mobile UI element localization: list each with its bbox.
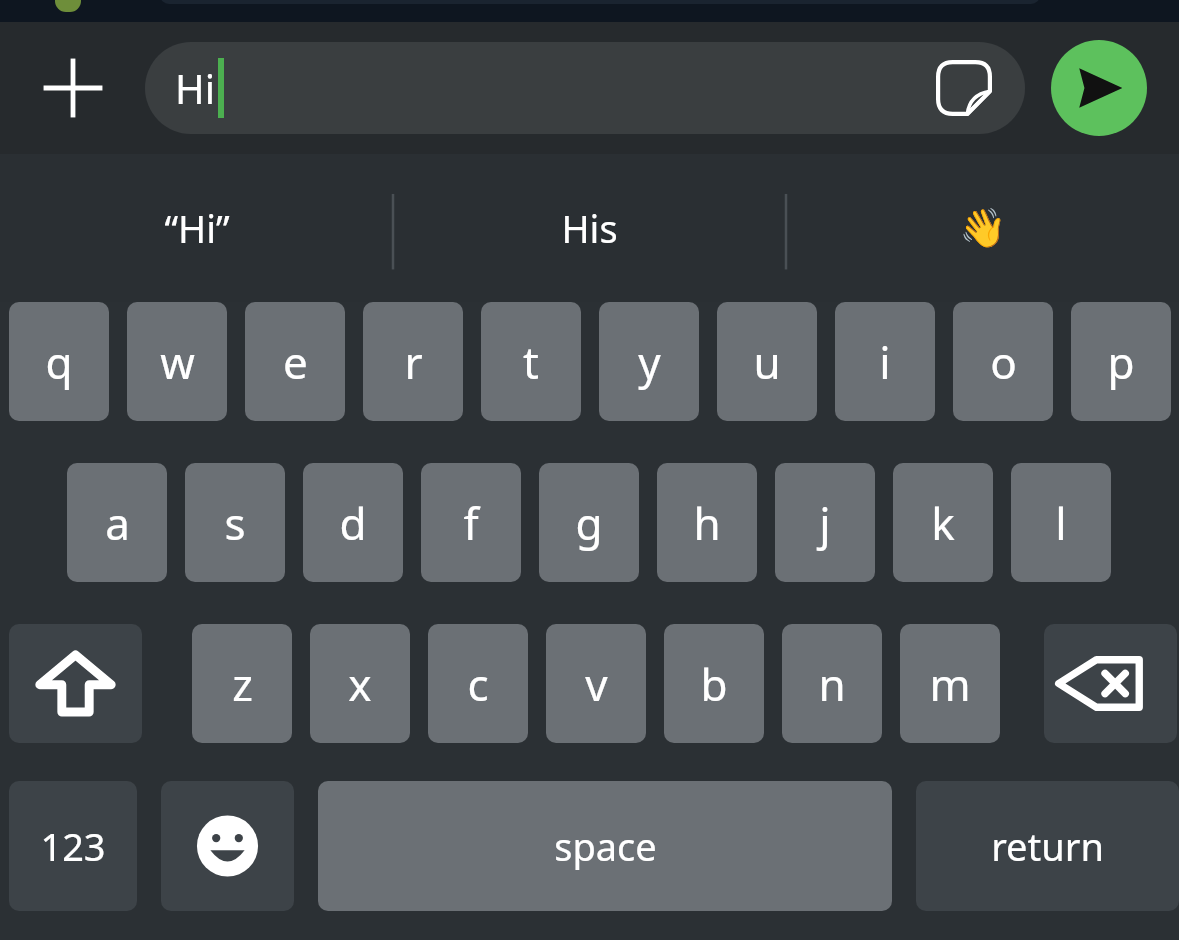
staticText: o <box>990 332 1017 392</box>
staticText: 123 <box>40 820 106 872</box>
staticText: b <box>700 654 728 714</box>
button[interactable]: k <box>893 463 993 582</box>
button[interactable]: i <box>835 302 935 421</box>
staticText: p <box>1107 332 1135 392</box>
button[interactable]: Send <box>1051 40 1147 136</box>
button[interactable]: v <box>546 624 646 743</box>
button[interactable]: q <box>9 302 109 421</box>
staticText: t <box>523 332 539 392</box>
staticText: q <box>45 332 73 392</box>
button[interactable]: w <box>127 302 227 421</box>
button[interactable]: f <box>421 463 521 582</box>
staticText: v <box>585 654 608 714</box>
staticText: space <box>554 820 657 872</box>
button[interactable]: “Hi” <box>0 154 393 302</box>
staticText: r <box>404 332 423 392</box>
button[interactable]: l <box>1011 463 1111 582</box>
button[interactable]: His <box>393 154 786 302</box>
staticText: z <box>232 654 253 714</box>
staticText: h <box>693 493 721 553</box>
button[interactable]: u <box>717 302 817 421</box>
staticText: w <box>160 332 195 392</box>
button[interactable]: h <box>657 463 757 582</box>
staticText: n <box>818 654 846 714</box>
button[interactable]: 👋 <box>786 154 1179 302</box>
button[interactable]: x <box>310 624 410 743</box>
button[interactable]: z <box>192 624 292 743</box>
button[interactable]: Attach <box>0 22 145 154</box>
staticText: a <box>105 493 130 553</box>
button[interactable]: g <box>539 463 639 582</box>
button[interactable]: y <box>599 302 699 421</box>
staticText: i <box>879 332 891 392</box>
staticText: c <box>467 654 489 714</box>
button[interactable]: Shift <box>9 624 142 743</box>
button[interactable]: Stickers <box>935 59 993 117</box>
button[interactable]: d <box>303 463 403 582</box>
staticText: f <box>463 493 479 553</box>
button[interactable]: j <box>775 463 875 582</box>
staticText: e <box>283 332 308 392</box>
staticText: m <box>929 654 971 714</box>
button[interactable]: a <box>67 463 167 582</box>
staticText: d <box>339 493 367 553</box>
button[interactable]: p <box>1071 302 1171 421</box>
button[interactable]: 123 <box>9 781 137 911</box>
staticText: g <box>575 493 603 553</box>
staticText: Hi <box>175 61 215 115</box>
button[interactable]: b <box>664 624 764 743</box>
button[interactable]: r <box>363 302 463 421</box>
staticText: 👋 <box>959 206 1007 251</box>
staticText: j <box>819 493 831 553</box>
button[interactable]: o <box>953 302 1053 421</box>
button[interactable]: space <box>318 781 892 911</box>
staticText: l <box>1055 493 1067 553</box>
staticText: u <box>753 332 781 392</box>
button[interactable]: m <box>900 624 1000 743</box>
button[interactable]: return <box>916 781 1179 911</box>
button[interactable]: Hi <box>145 42 1025 134</box>
button[interactable]: e <box>245 302 345 421</box>
button[interactable]: s <box>185 463 285 582</box>
button[interactable]: c <box>428 624 528 743</box>
staticText: y <box>638 332 661 392</box>
button[interactable]: Backspace <box>1044 624 1177 743</box>
staticText: x <box>348 654 372 714</box>
staticText: k <box>931 493 955 553</box>
staticText: return <box>991 820 1104 872</box>
button[interactable]: n <box>782 624 882 743</box>
staticText: “Hi” <box>164 202 230 254</box>
staticText: His <box>561 202 618 254</box>
button[interactable]: Emoji <box>161 781 294 911</box>
button[interactable]: t <box>481 302 581 421</box>
staticText: s <box>224 493 246 553</box>
